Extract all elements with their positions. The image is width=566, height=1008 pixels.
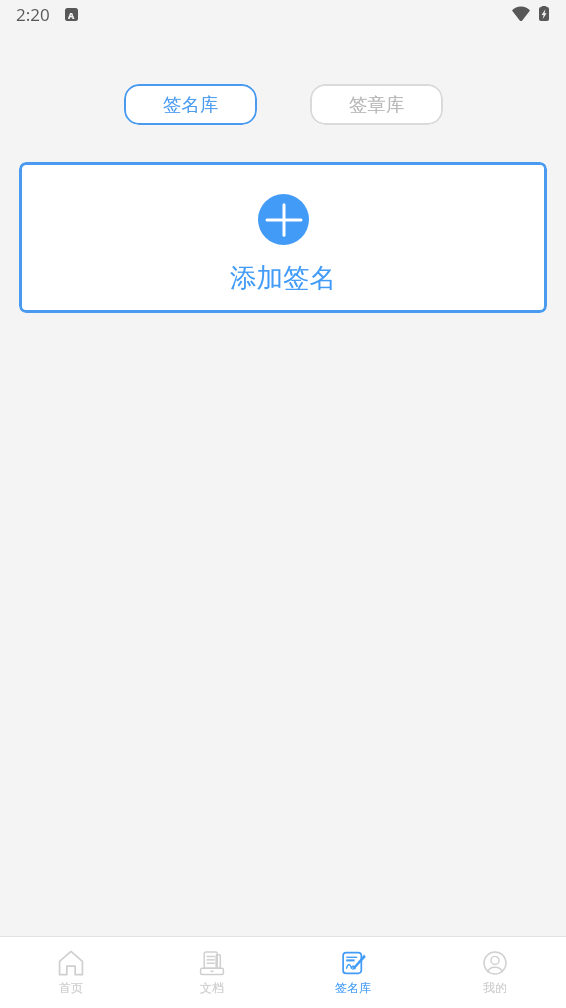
button[interactable]: Documents <box>141 942 282 1004</box>
staticText: 添加签名 <box>230 261 336 294</box>
staticText: 签名库 <box>335 980 371 995</box>
button[interactable]: Home <box>0 942 141 1004</box>
staticText: 2:20 <box>16 3 50 26</box>
staticText: A <box>68 9 75 21</box>
staticText: 文档 <box>200 980 224 995</box>
staticText: 首页 <box>59 980 83 995</box>
button[interactable]: Profile <box>424 942 566 1004</box>
button[interactable]: 签名库 <box>124 84 257 125</box>
button[interactable]: Signatures <box>282 942 424 1004</box>
staticText: 签章库 <box>349 93 405 116</box>
button[interactable]: 签章库 <box>310 84 443 125</box>
staticText: 我的 <box>483 980 507 995</box>
button[interactable]: 添加签名 <box>19 162 547 313</box>
staticText: 签名库 <box>163 93 219 116</box>
